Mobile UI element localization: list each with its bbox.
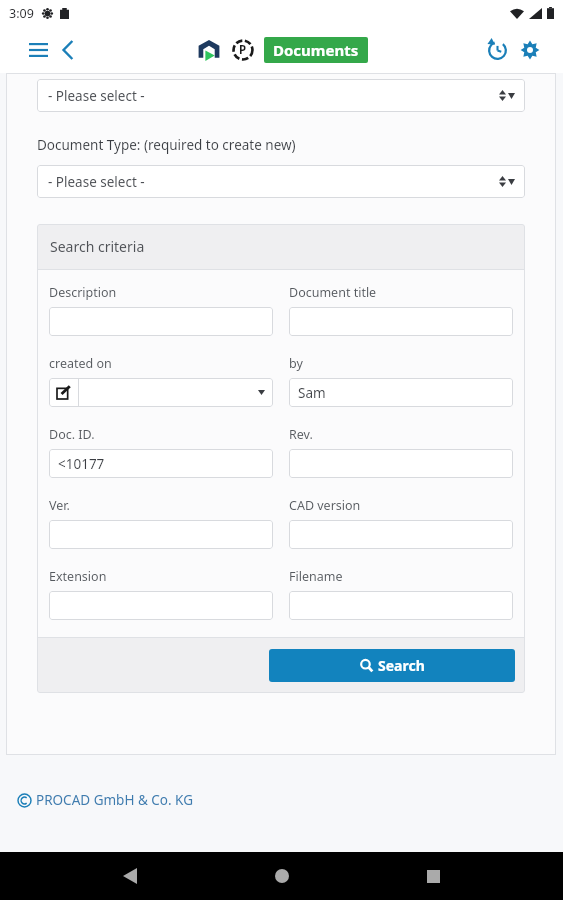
staticText: Description bbox=[49, 284, 117, 301]
button[interactable] bbox=[289, 520, 513, 549]
staticText: - Please select - bbox=[48, 87, 145, 105]
staticText: 3:09 bbox=[9, 5, 34, 22]
staticText: Search criteria bbox=[50, 237, 145, 256]
staticText: Extension bbox=[49, 568, 107, 585]
button[interactable]: Recent apps bbox=[411, 854, 455, 898]
button[interactable] bbox=[289, 449, 513, 478]
button[interactable]: - Please select - bbox=[37, 79, 525, 112]
staticText: Filename bbox=[289, 568, 343, 585]
button[interactable] bbox=[79, 378, 258, 407]
staticText: Search bbox=[378, 656, 425, 675]
staticText: Document Type: (required to create new) bbox=[37, 136, 296, 154]
staticText: Ver. bbox=[49, 497, 70, 514]
button[interactable] bbox=[49, 591, 273, 620]
button[interactable] bbox=[49, 307, 273, 336]
button[interactable]: - Please select - bbox=[37, 165, 525, 198]
button[interactable]: Menu bbox=[26, 38, 50, 62]
button[interactable]: PROCAD GmbH & Co. KG bbox=[18, 791, 194, 809]
button[interactable] bbox=[289, 591, 513, 620]
button[interactable]: Documents bbox=[273, 40, 359, 60]
button[interactable]: Home bbox=[260, 854, 304, 898]
staticText: P bbox=[239, 42, 247, 58]
button[interactable]: Edit date bbox=[49, 378, 78, 407]
button[interactable] bbox=[49, 520, 273, 549]
button[interactable] bbox=[289, 307, 513, 336]
button[interactable]: <10177 bbox=[49, 449, 273, 478]
staticText: Rev. bbox=[289, 426, 313, 443]
staticText: created on bbox=[49, 355, 112, 372]
button[interactable]: Back bbox=[56, 38, 80, 62]
button[interactable]: Back bbox=[108, 854, 152, 898]
staticText: Doc. ID. bbox=[49, 426, 95, 443]
staticText: Sam bbox=[298, 384, 326, 402]
staticText: <10177 bbox=[58, 455, 105, 473]
staticText: CAD version bbox=[289, 497, 361, 514]
staticText: - Please select - bbox=[48, 173, 145, 191]
staticText: by bbox=[289, 355, 303, 372]
staticText: PROCAD GmbH & Co. KG bbox=[36, 791, 194, 809]
button[interactable]: Sam bbox=[289, 378, 513, 407]
button[interactable]: Settings bbox=[517, 37, 543, 63]
button[interactable]: History bbox=[484, 37, 510, 63]
button[interactable]: Search bbox=[269, 649, 515, 682]
staticText: Documents bbox=[273, 40, 359, 60]
staticText: Document title bbox=[289, 284, 377, 301]
